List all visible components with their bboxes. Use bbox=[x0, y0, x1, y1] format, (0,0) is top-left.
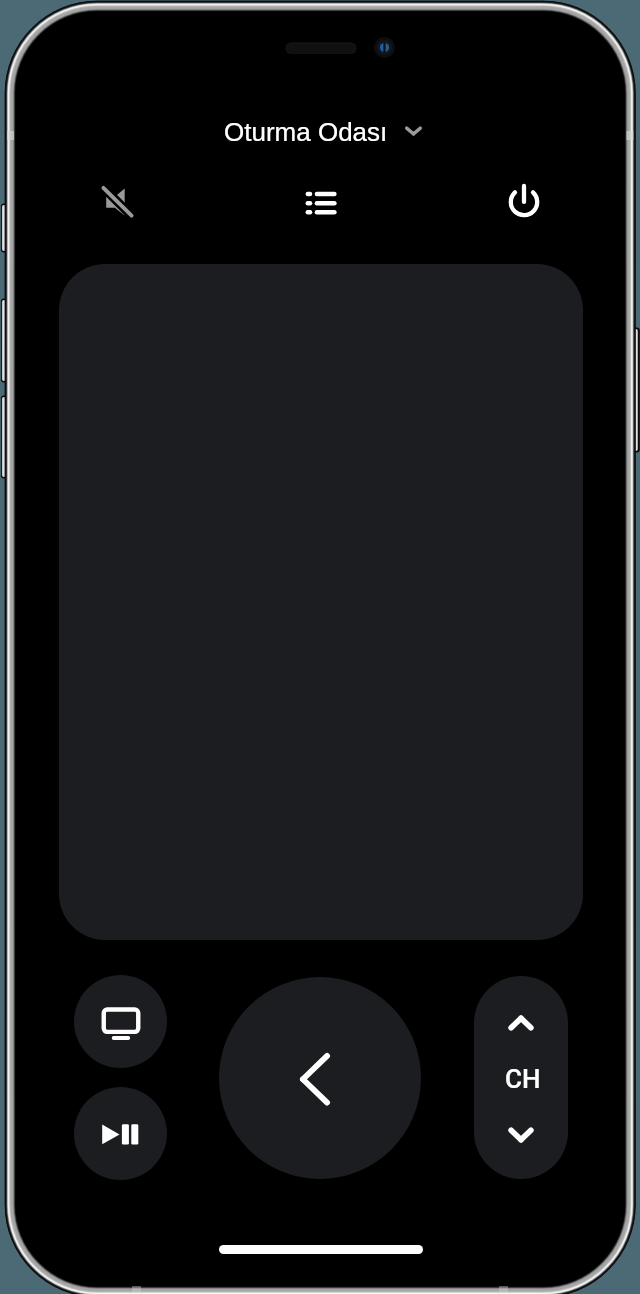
button[interactable]: Channel up bbox=[474, 976, 568, 1050]
button[interactable]: Play Pause bbox=[74, 1087, 167, 1180]
button[interactable]: Oturma Odası bbox=[19, 111, 624, 151]
button[interactable]: Power bbox=[494, 172, 554, 232]
button[interactable]: Back bbox=[219, 977, 421, 1179]
button[interactable]: Mute bbox=[88, 172, 148, 232]
button[interactable]: Menu bbox=[291, 174, 351, 234]
button[interactable]: CH bbox=[474, 1050, 568, 1106]
staticText: CH bbox=[505, 1064, 541, 1094]
button[interactable]: Channel down bbox=[474, 1106, 568, 1179]
button[interactable]: TV bbox=[74, 975, 167, 1068]
staticText: Oturma Odası bbox=[224, 117, 388, 146]
